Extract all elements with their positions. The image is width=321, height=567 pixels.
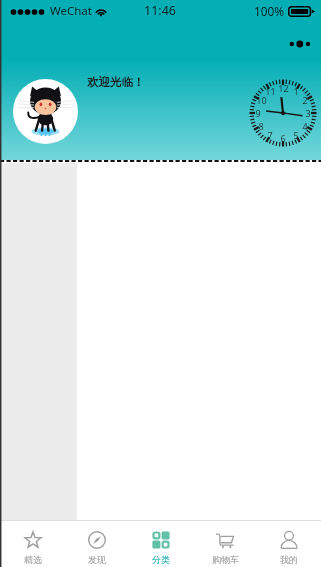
- staticText: 2: [302, 94, 308, 106]
- staticText: 欢迎光临！: [87, 75, 145, 89]
- staticText: WeChat: [50, 3, 92, 19]
- staticText: 发现: [88, 554, 106, 565]
- staticText: 我的: [280, 554, 298, 565]
- staticText: 5: [293, 129, 299, 141]
- staticText: 100%: [254, 3, 285, 19]
- staticText: 11: [265, 85, 276, 97]
- button[interactable]: More options: [283, 34, 317, 54]
- staticText: 购物车: [212, 554, 239, 565]
- staticText: 3: [305, 107, 311, 119]
- button[interactable]: 分类: [129, 521, 193, 567]
- staticText: 精选: [24, 554, 42, 565]
- staticText: 12: [278, 82, 289, 94]
- staticText: 9: [255, 107, 261, 119]
- button[interactable]: 我的: [257, 521, 321, 567]
- button[interactable]: 购物车: [193, 521, 257, 567]
- button[interactable]: 发现: [65, 521, 129, 567]
- button[interactable]: Avatar: [13, 79, 78, 144]
- staticText: 8: [258, 120, 264, 132]
- staticText: 1: [293, 85, 299, 97]
- staticText: 6: [280, 132, 286, 144]
- staticText: 7: [267, 129, 273, 141]
- button[interactable]: 精选: [0, 521, 65, 567]
- staticText: 4: [302, 120, 308, 132]
- staticText: 分类: [152, 554, 170, 565]
- staticText: 11:46: [144, 2, 176, 19]
- staticText: 10: [256, 94, 267, 106]
